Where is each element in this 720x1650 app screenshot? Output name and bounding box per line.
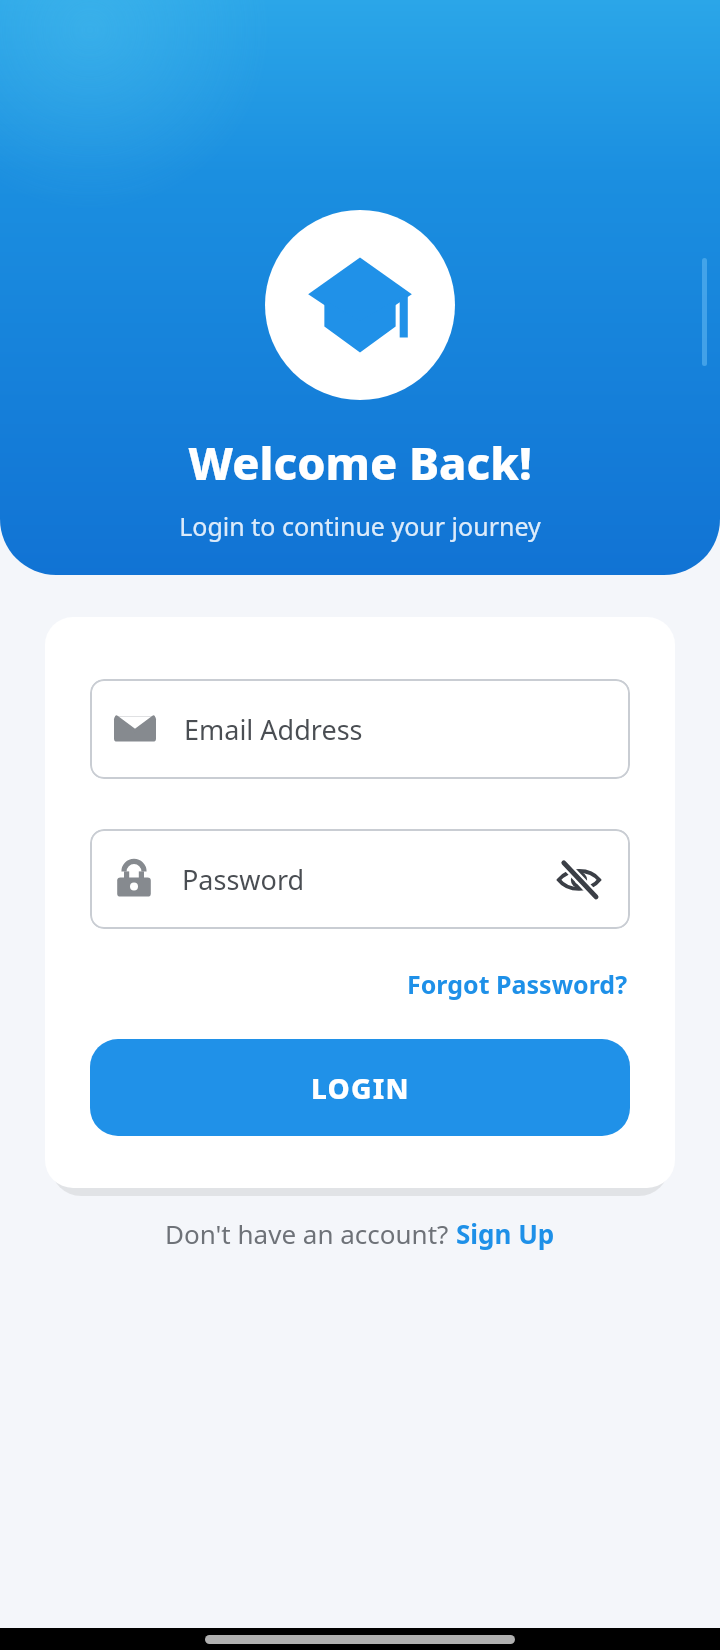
button[interactable]: Email Address — [90, 679, 630, 779]
button[interactable]: Don't have an account? — [155, 1208, 565, 1259]
staticText: Forgot Password? — [407, 967, 628, 1001]
staticText: Login to continue your journey — [179, 509, 541, 543]
button[interactable]: LOGIN — [90, 1039, 630, 1136]
staticText: Welcome Back! — [188, 432, 532, 493]
staticText: Don't have an account? — [165, 1216, 456, 1251]
staticText: Sign Up — [456, 1216, 555, 1251]
staticText: Password — [182, 861, 305, 898]
button[interactable]: Show password — [552, 852, 606, 906]
button[interactable]: Forgot Password? — [405, 961, 630, 1007]
staticText: LOGIN — [311, 1069, 410, 1107]
staticText: Email Address — [184, 711, 363, 748]
button[interactable]: Password — [90, 829, 630, 929]
